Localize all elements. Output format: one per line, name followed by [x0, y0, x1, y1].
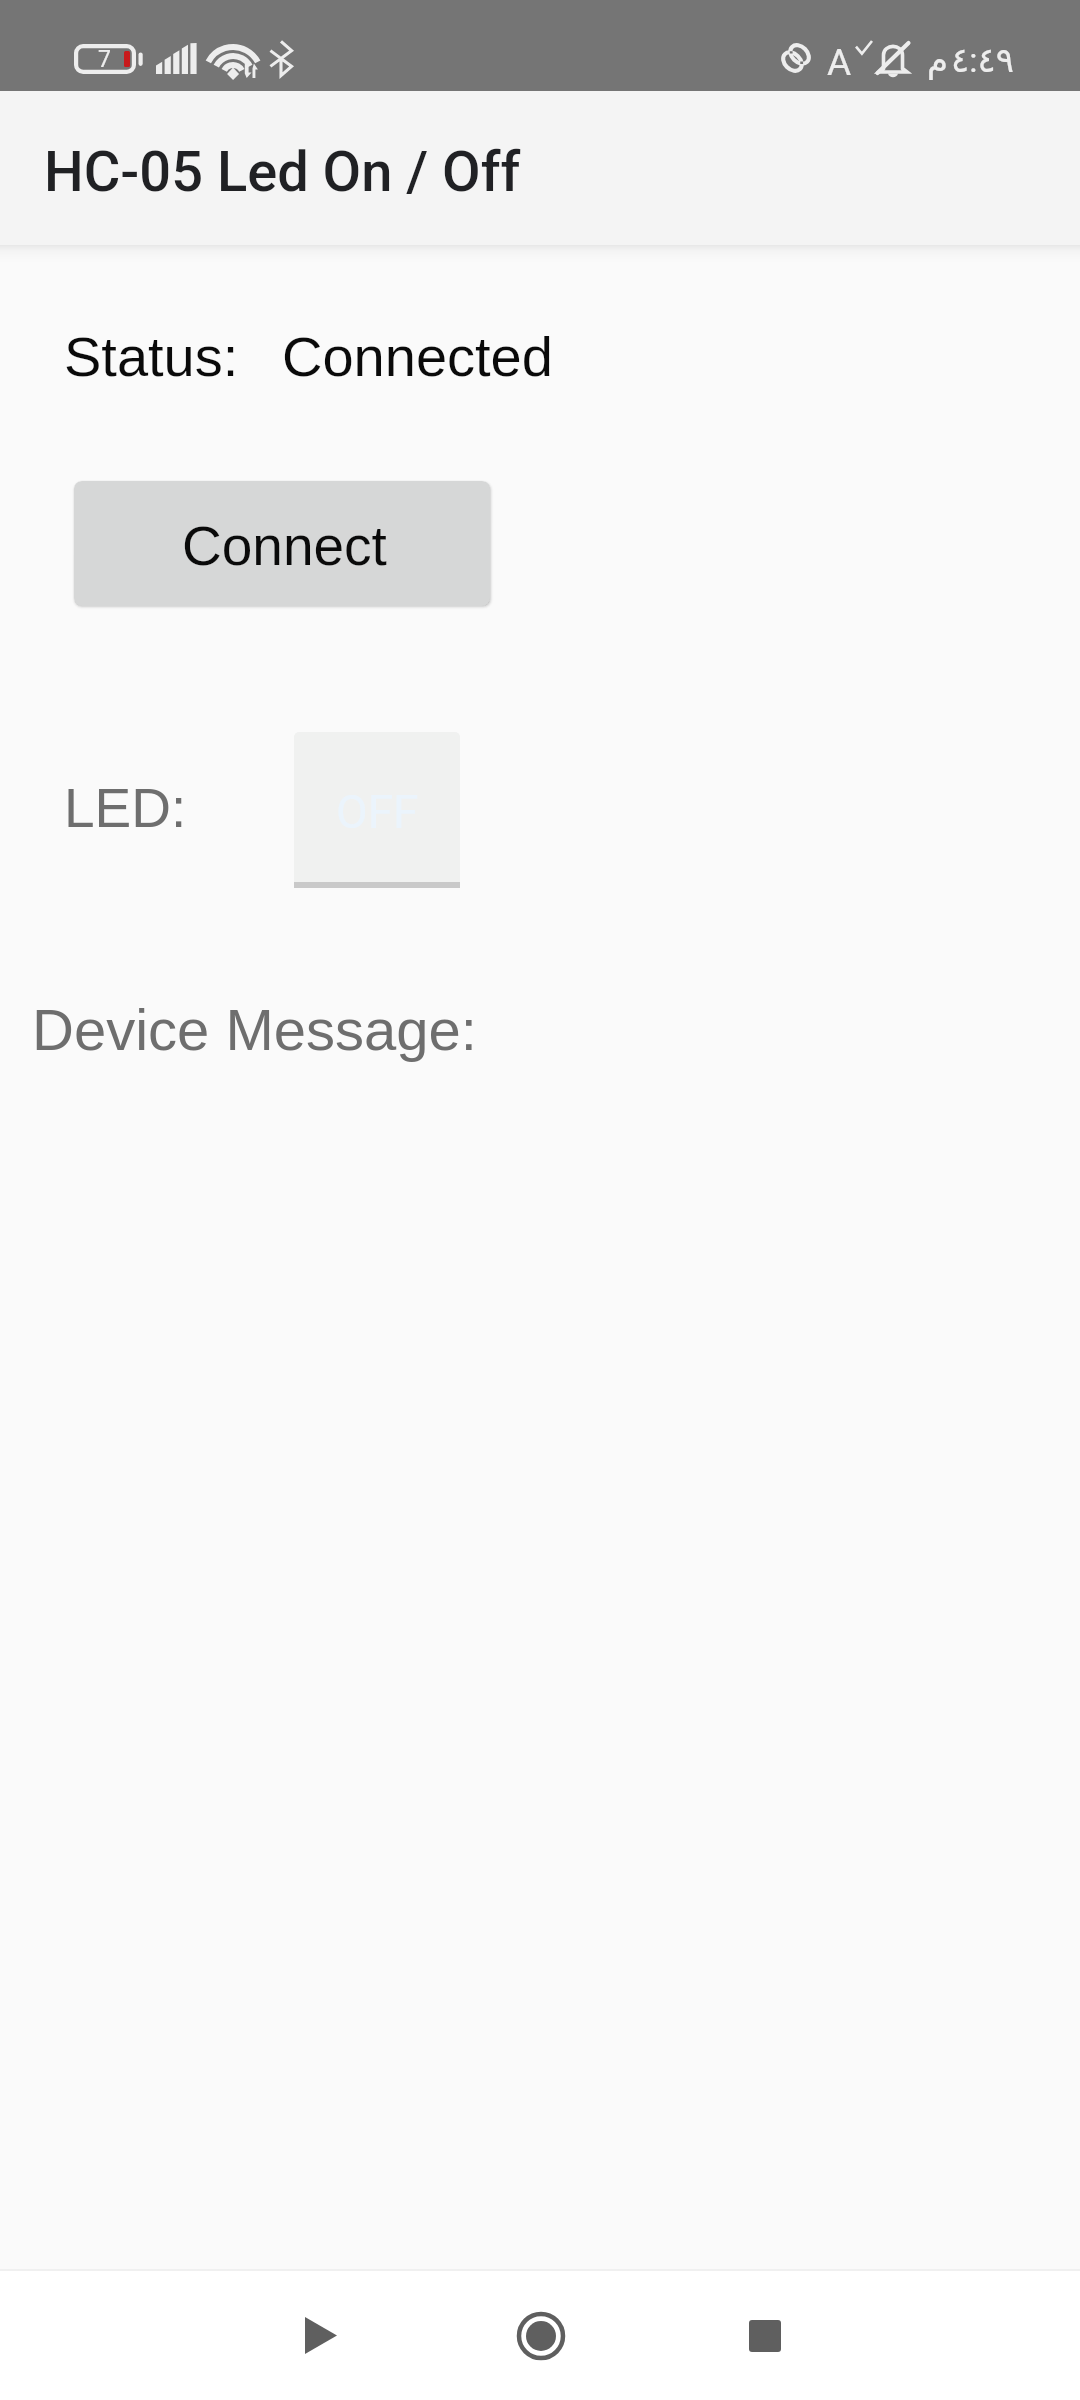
button[interactable]: Connect: [74, 481, 490, 606]
staticText: Status:: [64, 325, 239, 388]
staticText: OFF: [336, 785, 419, 839]
staticText: م: [927, 40, 949, 80]
staticText: HC-05 Led On / Off: [44, 139, 521, 205]
staticText: LED:: [64, 777, 187, 838]
button[interactable]: Recent apps: [715, 2269, 815, 2400]
staticText: Device Message:: [32, 997, 477, 1062]
staticText: 7: [98, 46, 111, 73]
button[interactable]: Back: [270, 2269, 370, 2400]
button[interactable]: Home: [491, 2269, 591, 2400]
staticText: Connect: [182, 515, 387, 576]
staticText: A: [827, 41, 852, 84]
staticText: Connected: [282, 325, 553, 388]
staticText: ٤:٤٩: [951, 40, 1015, 80]
